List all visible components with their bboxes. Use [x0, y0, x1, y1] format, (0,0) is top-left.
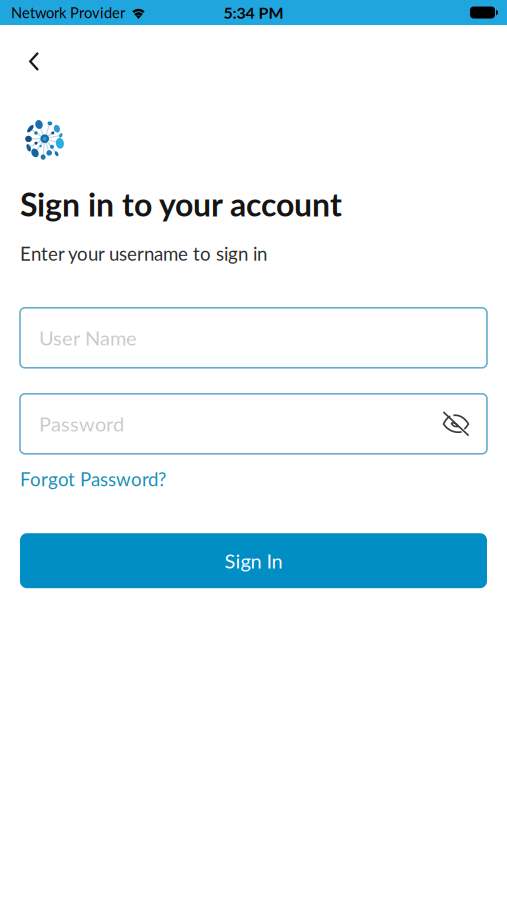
- button[interactable]: Show password: [442, 411, 470, 437]
- button[interactable]: Forgot Password?: [20, 463, 166, 495]
- button[interactable]: User Name: [20, 308, 487, 368]
- staticText: User Name: [39, 326, 137, 350]
- staticText: Sign In: [224, 549, 282, 573]
- button[interactable]: Back: [15, 39, 53, 83]
- staticText: Network Provider: [11, 4, 125, 21]
- staticText: Sign in to your account: [20, 185, 342, 223]
- staticText: Password: [39, 412, 124, 436]
- staticText: Forgot Password?: [20, 468, 166, 490]
- staticText: 5:34 PM: [223, 3, 283, 22]
- button[interactable]: Sign In: [20, 533, 487, 588]
- staticText: Enter your username to sign in: [20, 242, 267, 265]
